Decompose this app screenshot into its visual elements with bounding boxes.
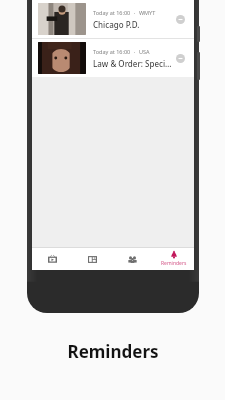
button[interactable]: Today at 16:00 [32,0,194,38]
button[interactable]: Shows [32,248,72,270]
staticText: Today at 16:00 [93,9,131,16]
button[interactable]: Today at 16:00 [32,39,194,77]
button[interactable]: Grid [72,248,112,270]
staticText: · [131,48,139,55]
staticText: Reminders [67,340,159,363]
button[interactable]: Remove reminder [172,11,188,27]
staticText: · [131,9,139,16]
button[interactable]: Remove reminder [172,50,188,66]
staticText: WMYT [139,9,156,16]
staticText: USA [139,48,150,55]
button[interactable]: Reminders [153,248,194,270]
staticText: Chicago P.D. [93,19,140,30]
button[interactable]: Social [112,248,153,270]
staticText: Reminders [161,260,187,267]
staticText: Today at 16:00 [93,48,131,55]
staticText: Law & Order: Speci… [93,58,172,69]
